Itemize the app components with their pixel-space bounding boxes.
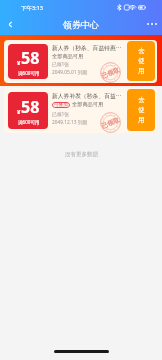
staticText: 去 (138, 96, 145, 104)
button[interactable]: ¥ (4, 40, 157, 83)
staticText: 全部商品可用 (72, 101, 104, 108)
button[interactable]: 去 (127, 89, 155, 131)
staticText: 2049.12.13 到期 (52, 119, 88, 126)
staticText: 新人券补发（秒杀、百益特… (52, 92, 126, 99)
button[interactable]: More options (142, 14, 162, 34)
staticText: ¥ (17, 108, 21, 116)
staticText: 满600可用 (18, 119, 40, 125)
button[interactable]: Back (0, 14, 20, 34)
staticText: 领券中心 (63, 19, 99, 30)
staticText: 去 (138, 47, 145, 55)
staticText: 可叠加 (54, 102, 68, 108)
button[interactable]: 去 (127, 41, 155, 81)
staticText: 已领1张 (52, 61, 70, 68)
staticText: 58 (21, 47, 40, 69)
staticText: 使 (138, 106, 145, 114)
staticText: 2049.05.01 到期 (52, 69, 88, 76)
staticText: 58 (21, 96, 40, 118)
staticText: 新人券（秒杀、百益特惠品… (52, 44, 126, 51)
staticText: 使 (138, 57, 145, 65)
staticText: 满600可用 (18, 70, 40, 76)
staticText: 已领取 (100, 66, 121, 80)
staticText: 用 (138, 67, 145, 75)
staticText: ¥ (17, 59, 21, 67)
staticText: 用 (138, 116, 145, 124)
button[interactable]: ¥ (4, 88, 157, 133)
staticText: 已领取 (100, 116, 121, 130)
staticText: 已领1张 (52, 111, 70, 118)
staticText: 下午3:13 (21, 4, 43, 12)
staticText: 没有更多数据 (65, 151, 98, 158)
staticText: 全部商品可用 (52, 53, 84, 60)
